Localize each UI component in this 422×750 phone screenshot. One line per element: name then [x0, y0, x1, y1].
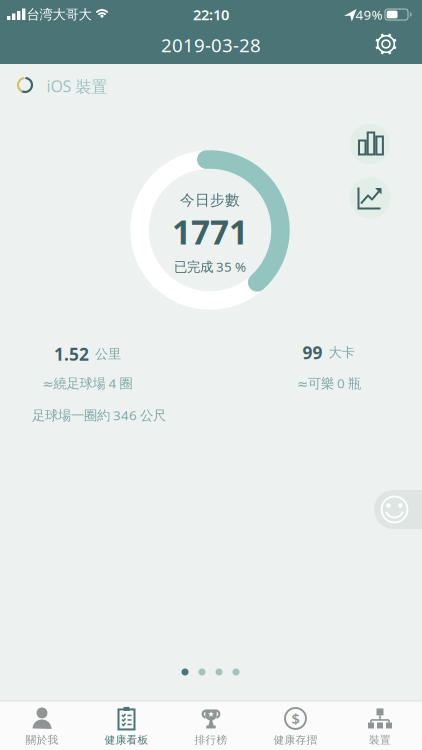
button[interactable]: $ [273, 705, 317, 746]
staticText: 台湾大哥大 [26, 6, 91, 23]
staticText: 99 [302, 341, 322, 364]
staticText: 已完成 35 % [174, 258, 246, 275]
staticText: 22:10 [193, 5, 229, 24]
staticText: 1.52 [54, 342, 89, 365]
staticText: 今日步數 [180, 191, 240, 209]
staticText: 49% [355, 6, 382, 23]
button[interactable]: 健康看板 [104, 705, 148, 746]
staticText: iOS 裝置 [46, 75, 107, 97]
staticText: 裝置 [369, 733, 391, 746]
button[interactable]: 裝置 [366, 705, 394, 746]
staticText: ≈可樂 0 瓶 [297, 374, 361, 392]
staticText: 2019-03-28 [161, 33, 261, 57]
button[interactable]: 關於我 [25, 705, 58, 746]
staticText: 排行榜 [194, 733, 227, 746]
staticText: 健康看板 [104, 733, 148, 746]
staticText: $ [291, 709, 299, 728]
button[interactable]: 排行榜 [194, 705, 227, 746]
button[interactable]: Settings [366, 24, 406, 64]
button[interactable]: Trend chart [349, 177, 390, 218]
button[interactable]: Bar chart [349, 123, 390, 164]
staticText: 大卡 [328, 344, 354, 361]
staticText: 關於我 [25, 733, 58, 746]
staticText: 足球場一圈約 346 公尺 [32, 406, 166, 424]
button[interactable]: Assistant [374, 490, 422, 529]
staticText: 健康存摺 [273, 733, 317, 746]
staticText: 公里 [95, 346, 121, 362]
staticText: 1771 [172, 209, 248, 254]
staticText: ≈繞足球場 4 圈 [42, 374, 132, 392]
